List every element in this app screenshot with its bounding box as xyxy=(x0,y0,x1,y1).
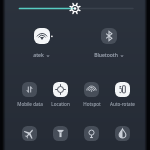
button[interactable]: Night light xyxy=(76,120,107,148)
button[interactable]: Flashlight xyxy=(45,120,76,148)
button[interactable]: Location xyxy=(45,76,76,107)
staticText: atek xyxy=(33,52,44,59)
staticText: Auto-rotate xyxy=(110,101,135,107)
button[interactable]: Hotspot xyxy=(76,76,107,107)
staticText: Mobile data xyxy=(17,101,43,107)
staticText: Hotspot xyxy=(83,101,101,107)
button[interactable]: atek xyxy=(8,18,75,59)
button[interactable]: Auto-rotate xyxy=(107,76,138,107)
staticText: Location xyxy=(51,101,70,107)
button[interactable]: Dark mode xyxy=(107,120,138,148)
staticText: Bluetooth xyxy=(94,52,118,59)
button[interactable]: Bluetooth xyxy=(75,18,142,59)
button[interactable]: Mobile data xyxy=(14,76,45,107)
button[interactable]: Brightness xyxy=(0,0,150,18)
button[interactable]: Airplane mode xyxy=(14,120,45,148)
